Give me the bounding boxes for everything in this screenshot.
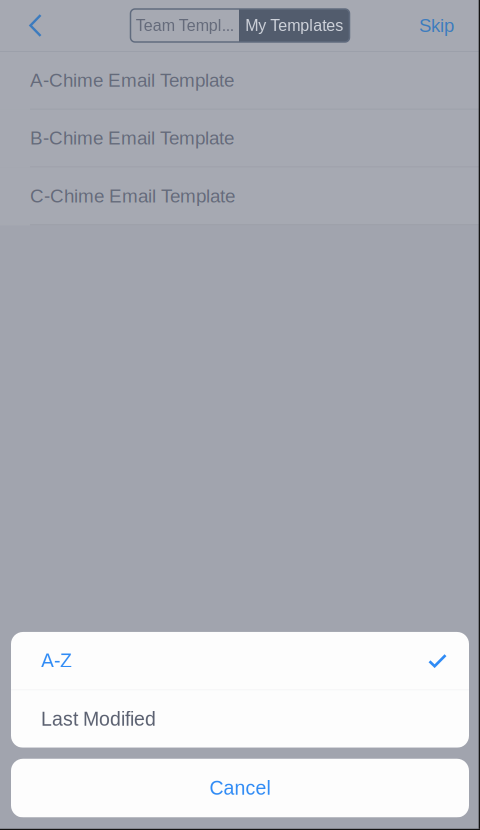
staticText: B-Chime Email Template (30, 128, 234, 149)
button[interactable]: A-Z (11, 632, 469, 689)
button[interactable]: C-Chime Email Template (0, 167, 480, 225)
button[interactable]: Back (13, 2, 57, 48)
button[interactable]: B-Chime Email Template (0, 110, 480, 167)
staticText: Team Templ... (136, 17, 234, 34)
button[interactable]: Skip (394, 2, 454, 48)
button[interactable]: Team Templ... (130, 9, 239, 42)
staticText: My Templates (245, 17, 343, 34)
button[interactable]: Cancel (11, 759, 469, 818)
staticText: Last Modified (41, 708, 156, 730)
button[interactable]: My Templates (239, 9, 349, 42)
button[interactable]: A-Chime Email Template (0, 52, 480, 110)
staticText: Cancel (209, 777, 270, 799)
staticText: A-Chime Email Template (30, 70, 234, 91)
button[interactable]: Last Modified (11, 690, 469, 748)
staticText: Skip (419, 15, 454, 36)
staticText: A-Z (41, 650, 72, 671)
staticText: C-Chime Email Template (30, 185, 235, 206)
